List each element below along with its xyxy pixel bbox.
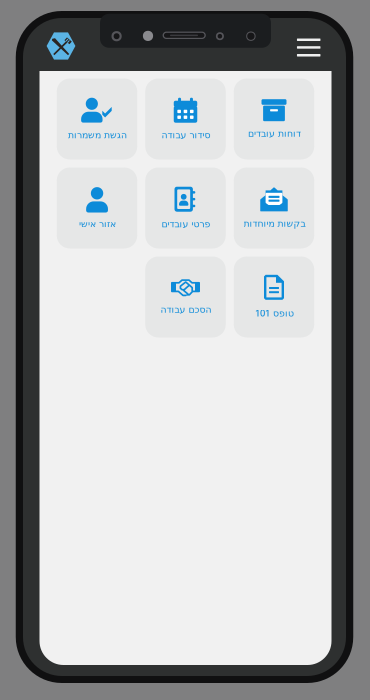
button[interactable]: בקשות מיוחדות	[234, 167, 314, 248]
button[interactable]: Menu	[290, 32, 328, 62]
staticText: דוחות עובדים	[247, 128, 300, 139]
staticText: פרטי עובדים	[161, 219, 210, 229]
staticText: הגשת משמרות	[67, 130, 126, 140]
button[interactable]: הסכם עבודה	[145, 256, 226, 337]
button[interactable]: הגשת משמרות	[57, 78, 137, 159]
staticText: סידור עבודה	[161, 130, 210, 140]
staticText: בקשות מיוחדות	[243, 218, 305, 229]
staticText: אזור אישי	[78, 219, 115, 229]
button[interactable]: פרטי עובדים	[145, 167, 226, 248]
button[interactable]: סידור עבודה	[145, 78, 226, 159]
staticText: הסכם עבודה	[160, 304, 211, 315]
button[interactable]: אזור אישי	[57, 167, 137, 248]
staticText: טופס 101	[254, 307, 293, 319]
button[interactable]: טופס 101	[234, 256, 314, 337]
button[interactable]: דוחות עובדים	[234, 78, 314, 159]
